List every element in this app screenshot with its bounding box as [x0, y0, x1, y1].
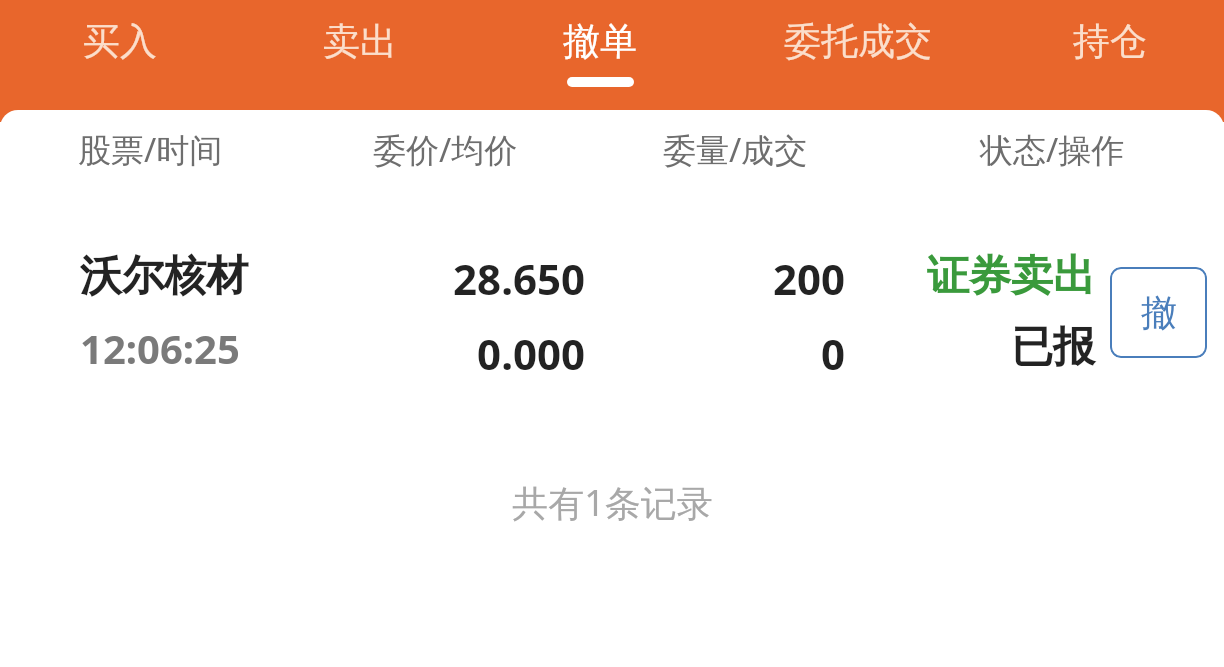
button[interactable]: 沃尔核材	[0, 250, 1224, 390]
staticText: 卖出	[323, 18, 397, 65]
staticText: 买入	[83, 18, 157, 65]
staticText: 28.650	[453, 250, 585, 307]
button[interactable]: 撤单	[480, 0, 720, 110]
staticText: 状态/操作	[980, 127, 1125, 172]
staticText: 委价/均价	[373, 127, 518, 172]
button[interactable]: 委托成交	[720, 0, 996, 110]
staticText: 委量/成交	[663, 127, 808, 172]
staticText: 共有1条记录	[512, 478, 713, 527]
staticText: 沃尔核材	[80, 250, 248, 303]
staticText: 12:06:25	[80, 321, 240, 375]
button[interactable]: 持仓	[996, 0, 1224, 110]
staticText: 委托成交	[784, 18, 932, 65]
staticText: 撤	[1141, 290, 1177, 335]
staticText: 撤单	[563, 18, 637, 65]
staticText: 200	[772, 250, 845, 307]
button[interactable]: 买入	[0, 0, 240, 110]
staticText: 已报	[1011, 321, 1095, 374]
staticText: 0.000	[477, 325, 585, 382]
staticText: 持仓	[1073, 18, 1147, 65]
staticText: 股票/时间	[78, 127, 223, 172]
staticText: 0	[820, 325, 845, 382]
staticText: 证券卖出	[927, 250, 1095, 303]
button[interactable]: 卖出	[240, 0, 480, 110]
button[interactable]: 撤单	[1110, 267, 1207, 358]
